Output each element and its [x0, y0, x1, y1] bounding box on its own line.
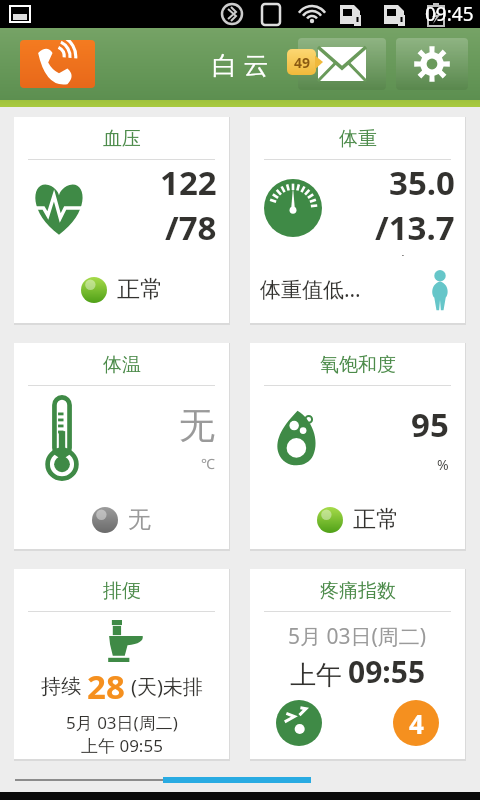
staticText: 体重 [339, 127, 377, 151]
staticText: 5月 03日(周二) [66, 711, 178, 734]
staticText: % [437, 455, 449, 474]
staticText: 持续 [41, 674, 81, 699]
staticText: 血压 [103, 127, 141, 151]
button[interactable]: 氧饱和度 [250, 343, 465, 549]
staticText: /78 [165, 205, 217, 250]
staticText: 09:45 [425, 1, 474, 27]
staticText: 无 [128, 505, 151, 534]
staticText: 体温 [103, 353, 141, 377]
staticText: 正常 [117, 275, 163, 304]
staticText: 白 云 [212, 47, 269, 81]
staticText: 49 [294, 53, 311, 72]
staticText: 09:55 [348, 651, 426, 692]
staticText: 正常 [353, 505, 399, 534]
staticText: 体重值低… [260, 275, 361, 304]
button[interactable]: 疼痛指数 [250, 569, 465, 759]
button[interactable]: Settings [396, 38, 468, 90]
staticText: 上午 09:55 [81, 734, 163, 757]
staticText: 疼痛指数 [320, 579, 396, 603]
staticText: (天)未排 [131, 673, 203, 700]
button[interactable]: 排便 [14, 569, 229, 759]
staticText: 122 [160, 160, 217, 205]
staticText: 28 [87, 664, 125, 709]
button[interactable]: 血压 [14, 117, 229, 323]
staticText: kg/BMI [401, 250, 453, 256]
staticText: ℃ [201, 454, 215, 473]
staticText: 5月 03日(周二) [288, 622, 427, 651]
staticText: 排便 [103, 579, 141, 603]
button[interactable]: 体温 [14, 343, 229, 549]
staticText: 上午 [290, 659, 342, 692]
staticText: 35.0 [389, 160, 455, 205]
button[interactable]: 体重 [250, 117, 465, 323]
staticText: 氧饱和度 [320, 353, 396, 377]
button[interactable]: Call [20, 40, 95, 88]
staticText: 95 [411, 402, 449, 447]
staticText: /13.7 [375, 205, 455, 250]
staticText: 4 [409, 706, 424, 741]
staticText: 无 [179, 403, 215, 448]
button[interactable]: Messages, 49 unread [298, 38, 386, 90]
